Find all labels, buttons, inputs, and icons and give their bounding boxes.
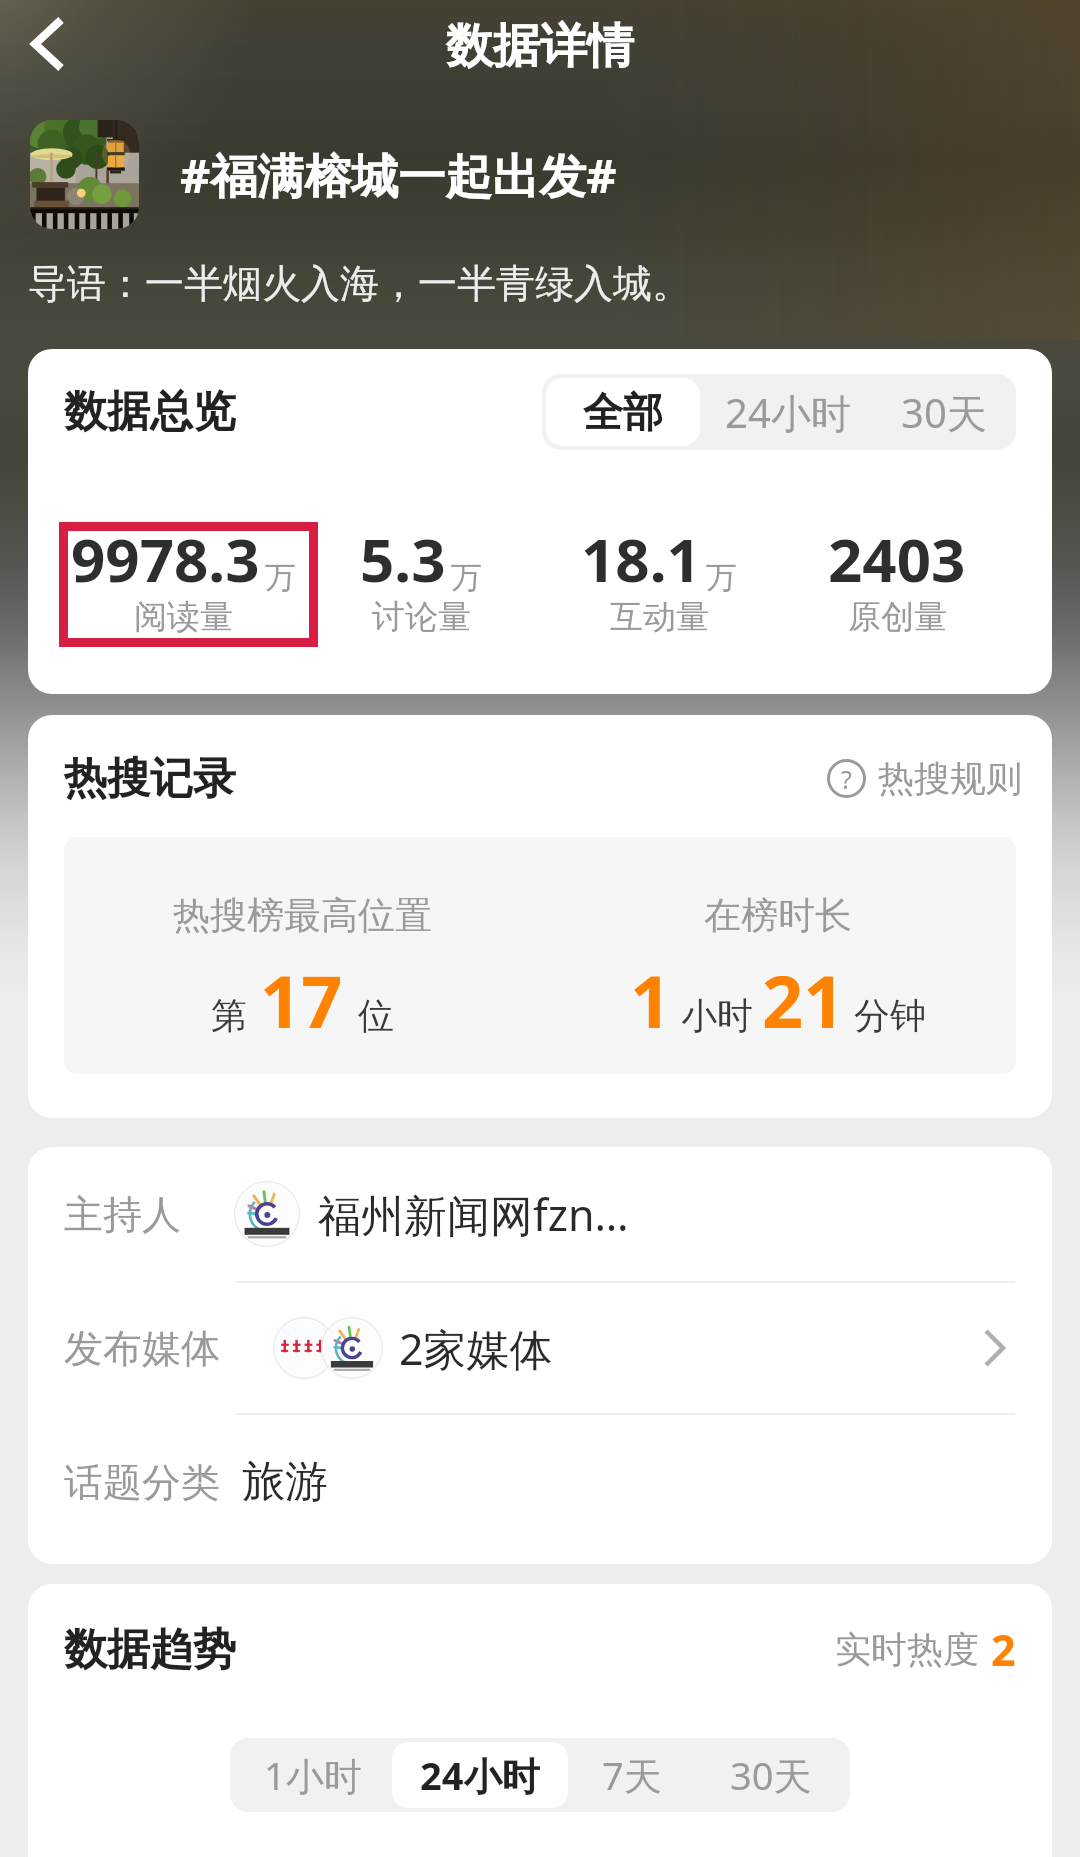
button[interactable]: 30天 (876, 378, 1012, 446)
staticText: 30天 (901, 385, 987, 440)
staticText: #福满榕城一起出发# (180, 143, 617, 207)
staticText: 原创量 (848, 596, 947, 638)
staticText: 位 (358, 993, 394, 1038)
staticText: 万 (706, 558, 737, 597)
staticText: 主持人 (64, 1190, 181, 1239)
staticText: 1 (630, 951, 672, 1049)
button[interactable]: 5.3 (302, 469, 540, 687)
button[interactable]: 9978.3 (64, 469, 302, 687)
staticText: 热搜榜最高位置 (173, 892, 432, 939)
staticText: 在榜时长 (704, 892, 852, 939)
staticText: 2403 (828, 518, 966, 600)
button[interactable]: 2403 (778, 469, 1016, 687)
staticText: 1小时 (264, 1749, 362, 1801)
staticText: 24小时 (725, 385, 851, 440)
staticText: 21 (762, 951, 845, 1049)
staticText: 小时 (681, 993, 753, 1038)
button[interactable]: 全部 (546, 378, 700, 446)
staticText: 全部 (583, 387, 663, 437)
button[interactable]: 7天 (568, 1742, 696, 1808)
staticText: 阅读量 (134, 596, 233, 638)
button[interactable]: ? (827, 756, 1022, 801)
button[interactable]: 24小时 (392, 1742, 568, 1808)
staticText: 7天 (602, 1749, 662, 1801)
staticText: 数据趋势 (64, 1623, 236, 1677)
other: More (975, 1328, 1015, 1368)
button[interactable]: 主持人 (28, 1147, 1052, 1281)
button[interactable]: Back (12, 12, 80, 80)
staticText: 导语：一半烟火入海，一半青绿入城。 (28, 259, 691, 308)
button[interactable]: 18.1 (540, 469, 778, 687)
staticText: 热搜记录 (64, 752, 236, 806)
staticText: 2 (991, 1620, 1016, 1679)
staticText: 30天 (730, 1749, 812, 1801)
staticText: 福州新闻网fzn… (318, 1185, 629, 1244)
staticText: 5.3 (360, 518, 446, 600)
staticText: 热搜规则 (878, 756, 1022, 801)
staticText: 话题分类 (64, 1458, 220, 1507)
button[interactable]: 话题分类 (28, 1415, 1052, 1549)
staticText: 互动量 (610, 596, 709, 638)
button[interactable]: 1小时 (234, 1742, 392, 1808)
staticText: 讨论量 (372, 596, 471, 638)
staticText: 数据总览 (64, 385, 236, 439)
staticText: 18.1 (581, 518, 701, 600)
staticText: 万 (451, 558, 482, 597)
staticText: 万 (265, 558, 296, 597)
staticText: 实时热度 (835, 1627, 979, 1672)
staticText: 2家媒体 (399, 1319, 553, 1378)
staticText: 分钟 (854, 993, 926, 1038)
staticText: 发布媒体 (64, 1324, 220, 1373)
button[interactable]: 30天 (696, 1742, 846, 1808)
button[interactable]: 发布媒体 (28, 1283, 1052, 1413)
staticText: 第 (211, 993, 247, 1038)
staticText: 17 (260, 951, 343, 1049)
staticText: 9978.3 (71, 518, 260, 600)
staticText: 数据详情 (446, 17, 634, 76)
staticText: 24小时 (420, 1749, 540, 1801)
button[interactable]: 24小时 (700, 378, 876, 446)
staticText: 旅游 (242, 1455, 328, 1509)
staticText: ? (841, 762, 852, 796)
